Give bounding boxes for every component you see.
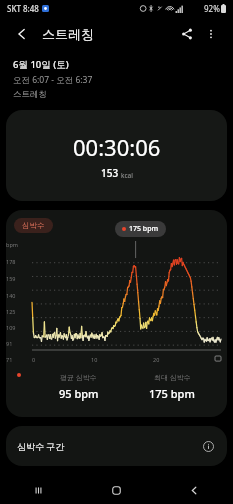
button[interactable]: Recents (0, 476, 77, 504)
staticText: 125 (6, 308, 16, 315)
staticText: 140 (6, 292, 16, 299)
button[interactable]: More options (199, 22, 223, 46)
staticText: 스트레칭 (42, 26, 94, 42)
staticText: 109 (6, 324, 16, 331)
staticText: 오전 6:07 - 오전 6:37 (13, 74, 93, 86)
button[interactable]: Back (10, 22, 34, 46)
staticText: 159 (6, 275, 16, 282)
button[interactable]: Home (77, 476, 155, 504)
staticText: 0 (32, 356, 36, 363)
staticText: 스트레칭 (13, 89, 47, 100)
button[interactable]: Info (200, 438, 216, 454)
staticText: 심박수 구간 (17, 440, 65, 452)
button[interactable]: Back (155, 476, 233, 504)
staticText: 평균 심박수 (60, 373, 97, 383)
staticText: bpm (6, 241, 18, 248)
staticText: 최대 심박수 (154, 373, 191, 383)
staticText: 00:30:06 (73, 132, 161, 162)
staticText: kcal (121, 171, 133, 180)
button[interactable]: Share (175, 22, 199, 46)
staticText: 91 (6, 340, 13, 347)
staticText: 심박수 (22, 221, 45, 230)
button[interactable]: 심박수 구간 (6, 426, 227, 466)
button[interactable]: 심박수 (6, 210, 227, 417)
staticText: 92% (204, 3, 220, 14)
staticText: 71 (6, 356, 13, 363)
staticText: 175 bpm (149, 386, 195, 401)
staticText: 10 (91, 356, 98, 363)
button[interactable]: 00:30:06 (6, 110, 227, 201)
staticText: SKT 8:48 (7, 3, 39, 14)
staticText: 175 bpm (129, 224, 159, 234)
staticText: 178 (6, 258, 16, 265)
staticText: 95 bpm (59, 386, 99, 401)
staticText: 6월 10일 (토) (13, 58, 69, 71)
staticText: 20 (153, 356, 160, 363)
staticText: 153 (101, 166, 119, 180)
